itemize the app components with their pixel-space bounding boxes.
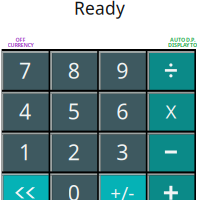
button[interactable]: 6: [99, 92, 146, 131]
staticText: OFF: [15, 36, 25, 43]
staticText: 7: [19, 56, 31, 84]
button[interactable]: 7: [2, 51, 49, 90]
staticText: CURRENCY: [7, 41, 33, 48]
button[interactable]: 4: [2, 92, 49, 131]
button[interactable]: Minus: [147, 133, 194, 171]
staticText: 2: [68, 138, 80, 166]
button[interactable]: 2: [50, 133, 97, 171]
button[interactable]: 1: [2, 133, 49, 171]
button[interactable]: Multiply: [147, 92, 194, 131]
staticText: AUTO D.P.: [170, 36, 195, 43]
staticText: X: [165, 99, 176, 124]
staticText: 0: [68, 179, 80, 200]
staticText: 4: [19, 97, 31, 125]
staticText: 1: [19, 138, 31, 166]
button[interactable]: 3: [99, 133, 146, 171]
button[interactable]: 0: [50, 173, 97, 200]
button[interactable]: 9: [99, 51, 146, 90]
staticText: 9: [116, 56, 128, 84]
button[interactable]: Plus minus: [99, 173, 146, 200]
button[interactable]: Plus: [147, 173, 194, 200]
button[interactable]: 5: [50, 92, 97, 131]
button[interactable]: 8: [50, 51, 97, 90]
button[interactable]: Divide: [147, 51, 194, 90]
staticText: 8: [68, 56, 80, 84]
button[interactable]: Backspace: [2, 173, 49, 200]
staticText: 6: [116, 97, 128, 125]
staticText: Ready: [74, 0, 125, 19]
staticText: +/-: [110, 180, 134, 200]
staticText: 3: [116, 138, 128, 166]
staticText: 5: [68, 97, 80, 125]
staticText: DISPLAY TO: [168, 41, 197, 48]
